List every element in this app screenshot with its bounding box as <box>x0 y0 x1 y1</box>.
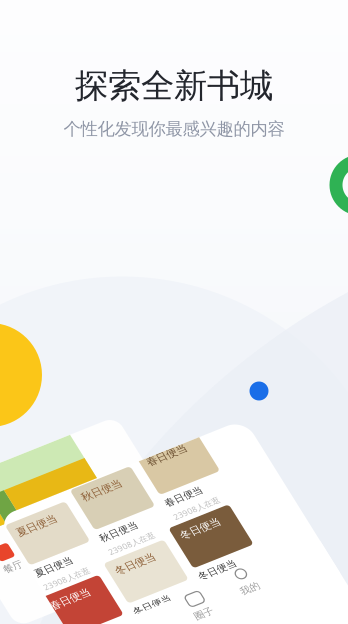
staticText: 探索全新书城 <box>75 65 273 106</box>
staticText: 秋日便当 <box>122 603 186 623</box>
staticText: 夏日便当 <box>11 543 79 564</box>
staticText: 春日便当 <box>243 589 307 609</box>
staticText: 夏日便当 <box>1 617 65 624</box>
staticText: 秋日便当 <box>132 529 200 550</box>
staticText: 春日便当 <box>253 515 321 536</box>
staticText: 个性化发现你最感兴趣的内容 <box>63 118 284 140</box>
